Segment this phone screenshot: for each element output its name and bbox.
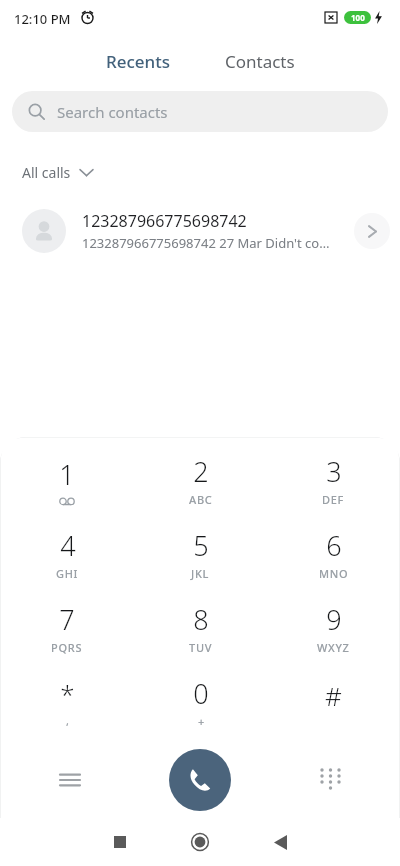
button[interactable]: 4 bbox=[0, 517, 134, 591]
button[interactable]: 7 bbox=[0, 591, 134, 665]
button[interactable]: * bbox=[0, 665, 134, 739]
staticText: DEF bbox=[322, 492, 345, 507]
button[interactable]: Dialpad bbox=[308, 758, 352, 802]
button[interactable]: Menu bbox=[48, 758, 92, 802]
button[interactable]: 2 bbox=[134, 443, 267, 517]
staticText: 9 bbox=[326, 601, 342, 638]
staticText: JKL bbox=[191, 566, 210, 581]
button[interactable]: 1 bbox=[0, 443, 134, 517]
staticText: 123287966775698742 bbox=[82, 210, 247, 232]
staticText: 0 bbox=[193, 675, 209, 712]
staticText: 100 bbox=[351, 12, 365, 23]
button[interactable]: 3 bbox=[267, 443, 400, 517]
staticText: * bbox=[60, 676, 75, 711]
button[interactable]: Call bbox=[169, 749, 231, 811]
staticText: All calls bbox=[22, 163, 71, 182]
staticText: ABC bbox=[189, 492, 213, 507]
button[interactable]: Call details bbox=[354, 213, 390, 249]
button[interactable]: Home bbox=[180, 822, 220, 862]
button[interactable]: Recent apps bbox=[100, 822, 140, 862]
button[interactable]: 8 bbox=[134, 591, 267, 665]
staticText: Search contacts bbox=[57, 102, 168, 122]
staticText: GHI bbox=[56, 566, 79, 581]
staticText: 5 bbox=[193, 527, 209, 564]
staticText: 123287966775698742 27 Mar Didn't co… bbox=[82, 234, 330, 252]
staticText: # bbox=[325, 678, 342, 713]
staticText: WXYZ bbox=[317, 640, 350, 655]
staticText: , bbox=[66, 713, 69, 728]
button[interactable]: Contacts bbox=[207, 44, 313, 79]
button[interactable]: 9 bbox=[267, 591, 400, 665]
button[interactable]: 0 bbox=[134, 665, 267, 739]
staticText: 1 bbox=[59, 456, 75, 493]
staticText: MNO bbox=[319, 566, 349, 581]
button[interactable]: 5 bbox=[134, 517, 267, 591]
staticText: + bbox=[198, 714, 205, 729]
button[interactable]: Back bbox=[260, 822, 300, 862]
staticText: 4 bbox=[60, 527, 76, 564]
staticText: 7 bbox=[59, 601, 75, 638]
button[interactable]: All calls bbox=[16, 157, 99, 188]
staticText: 12:10 PM bbox=[14, 10, 71, 28]
button[interactable]: 123287966775698742 bbox=[0, 203, 400, 259]
button[interactable]: Recents bbox=[88, 44, 189, 79]
staticText: Recents bbox=[106, 50, 171, 73]
button[interactable]: 6 bbox=[267, 517, 400, 591]
button[interactable]: # bbox=[267, 665, 400, 739]
staticText: Contacts bbox=[225, 50, 295, 73]
staticText: TUV bbox=[189, 640, 213, 655]
staticText: 2 bbox=[193, 453, 209, 490]
staticText: 8 bbox=[193, 601, 209, 638]
staticText: PQRS bbox=[51, 640, 83, 655]
staticText: 6 bbox=[326, 527, 342, 564]
button[interactable]: Search contacts bbox=[12, 91, 388, 132]
staticText: 3 bbox=[326, 453, 342, 490]
